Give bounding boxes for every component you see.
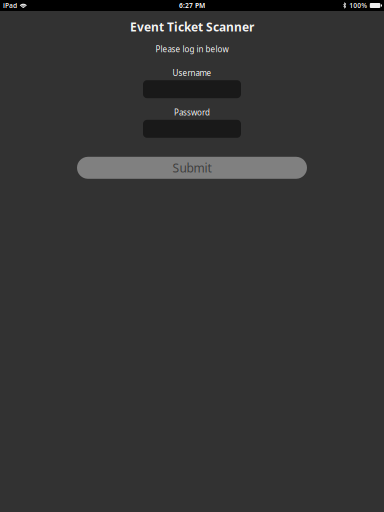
- staticText: Submit: [172, 160, 211, 176]
- staticText: 6:27 PM: [179, 1, 205, 10]
- button[interactable]: Submit: [77, 157, 307, 179]
- staticText: Please log in below: [155, 44, 228, 54]
- staticText: Username: [172, 68, 211, 78]
- staticText: 100%: [349, 1, 367, 10]
- staticText: iPad: [3, 1, 17, 10]
- staticText: Event Ticket Scanner: [130, 19, 254, 35]
- staticText: Password: [174, 107, 210, 118]
